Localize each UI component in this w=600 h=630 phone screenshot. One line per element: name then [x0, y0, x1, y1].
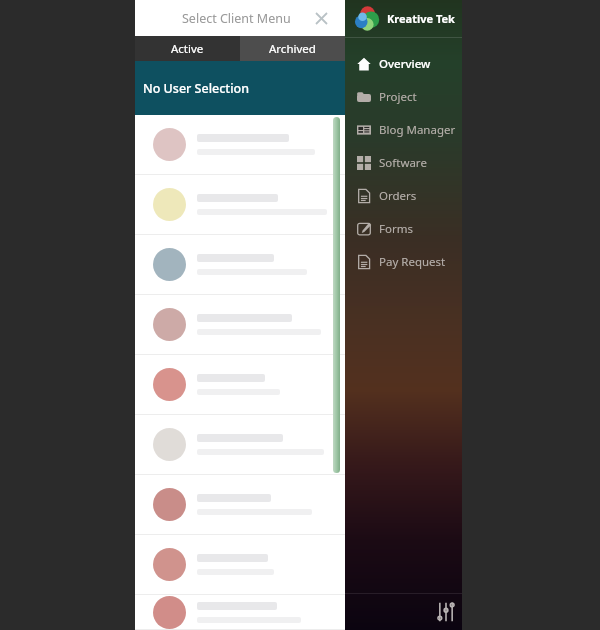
staticText: Pay Request: [379, 254, 446, 270]
button[interactable]: Settings: [345, 594, 462, 630]
button[interactable]: [135, 355, 345, 415]
button[interactable]: [135, 175, 345, 235]
button[interactable]: [135, 415, 345, 475]
button[interactable]: [135, 295, 345, 355]
button[interactable]: Overview: [345, 47, 462, 80]
button[interactable]: [135, 115, 345, 175]
staticText: Active: [171, 41, 204, 57]
staticText: Orders: [379, 188, 417, 204]
button[interactable]: [135, 595, 345, 630]
button[interactable]: Kreative Tek: [345, 0, 462, 37]
staticText: Project Manage: [379, 89, 462, 105]
staticText: Kreative Tek: [387, 11, 455, 26]
staticText: No User Selection: [143, 80, 249, 97]
staticText: Overview: [379, 56, 431, 72]
staticText: Blog Manager: [379, 122, 456, 138]
button[interactable]: Active: [135, 36, 240, 61]
button[interactable]: [135, 235, 345, 295]
button[interactable]: Project Manage: [345, 80, 462, 113]
button[interactable]: Forms: [345, 212, 462, 245]
staticText: Select Client Menu: [182, 10, 291, 27]
button[interactable]: Close: [311, 8, 331, 28]
staticText: Archived: [269, 41, 316, 57]
button[interactable]: [135, 535, 345, 595]
button[interactable]: Orders: [345, 179, 462, 212]
button[interactable]: Blog Manager: [345, 113, 462, 146]
button[interactable]: Pay Request: [345, 245, 462, 278]
staticText: Software Manag: [379, 155, 462, 171]
button[interactable]: Software Manag: [345, 146, 462, 179]
button[interactable]: [135, 475, 345, 535]
staticText: Forms: [379, 221, 413, 237]
button[interactable]: Archived: [240, 36, 345, 61]
